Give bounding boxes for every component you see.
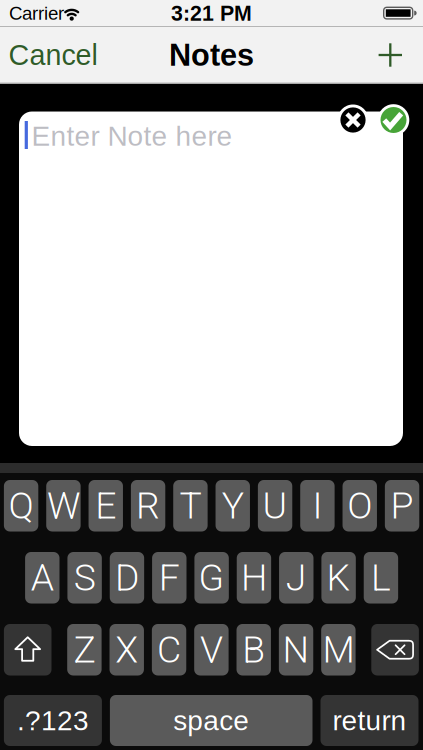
staticText: A [31,556,54,600]
button[interactable]: Z [67,624,102,675]
button[interactable]: C [152,624,186,675]
button[interactable]: Discard note [337,104,368,135]
staticText: L [371,556,391,600]
staticText: Enter Note here [31,120,232,152]
button[interactable]: E [89,480,123,531]
staticText: Z [73,628,95,672]
button[interactable]: K [321,552,356,603]
staticText: U [263,484,288,528]
button[interactable]: W [46,480,81,531]
button[interactable]: O [342,480,377,531]
button[interactable]: U [258,480,292,531]
staticText: N [282,628,309,672]
button[interactable]: M [321,624,356,675]
staticText: K [327,556,351,600]
staticText: C [157,628,181,672]
button[interactable]: Delete [371,624,419,675]
button[interactable]: return [320,695,418,746]
staticText: space [173,705,249,736]
button[interactable]: V [194,624,229,675]
staticText: E [95,484,116,528]
staticText: P [391,484,414,528]
button[interactable]: S [67,552,102,603]
button[interactable]: Q [4,480,38,531]
button[interactable]: A [25,552,59,603]
staticText: R [136,484,160,528]
staticText: I [312,484,322,528]
button[interactable]: Add note [379,43,402,67]
button[interactable]: Y [215,480,250,531]
staticText: G [199,556,225,600]
button[interactable]: space [110,695,312,746]
staticText: S [74,556,96,600]
button[interactable]: D [110,552,144,603]
staticText: X [115,628,138,672]
button[interactable]: P [385,480,419,531]
button[interactable]: X [109,624,144,675]
staticText: D [115,556,139,600]
staticText: .?123 [17,705,89,736]
button[interactable]: .?123 [4,695,102,746]
button[interactable]: B [236,624,271,675]
staticText: J [286,556,307,600]
staticText: W [47,484,80,528]
button[interactable]: L [364,552,398,603]
staticText: Q [9,484,34,528]
staticText: M [322,628,354,672]
staticText: O [347,484,372,528]
button[interactable]: F [152,552,186,603]
button[interactable]: Shift [4,624,51,675]
staticText: V [200,628,223,672]
staticText: Notes [169,38,254,72]
button[interactable]: R [131,480,165,531]
button[interactable]: I [300,480,335,531]
staticText: B [242,628,265,672]
staticText: T [179,484,201,528]
button[interactable]: T [173,480,208,531]
button[interactable]: Save note [378,104,409,136]
button[interactable]: N [279,624,313,675]
button[interactable]: J [279,552,313,603]
button[interactable]: G [194,552,229,603]
staticText: Cancel [8,39,97,71]
staticText: return [332,705,406,736]
staticText: Carrier [9,3,64,24]
staticText: 3:21 PM [171,1,252,25]
button[interactable]: Cancel [8,39,97,71]
staticText: H [241,556,267,600]
staticText: F [159,556,180,600]
staticText: Y [222,484,244,528]
button[interactable]: H [237,552,271,603]
